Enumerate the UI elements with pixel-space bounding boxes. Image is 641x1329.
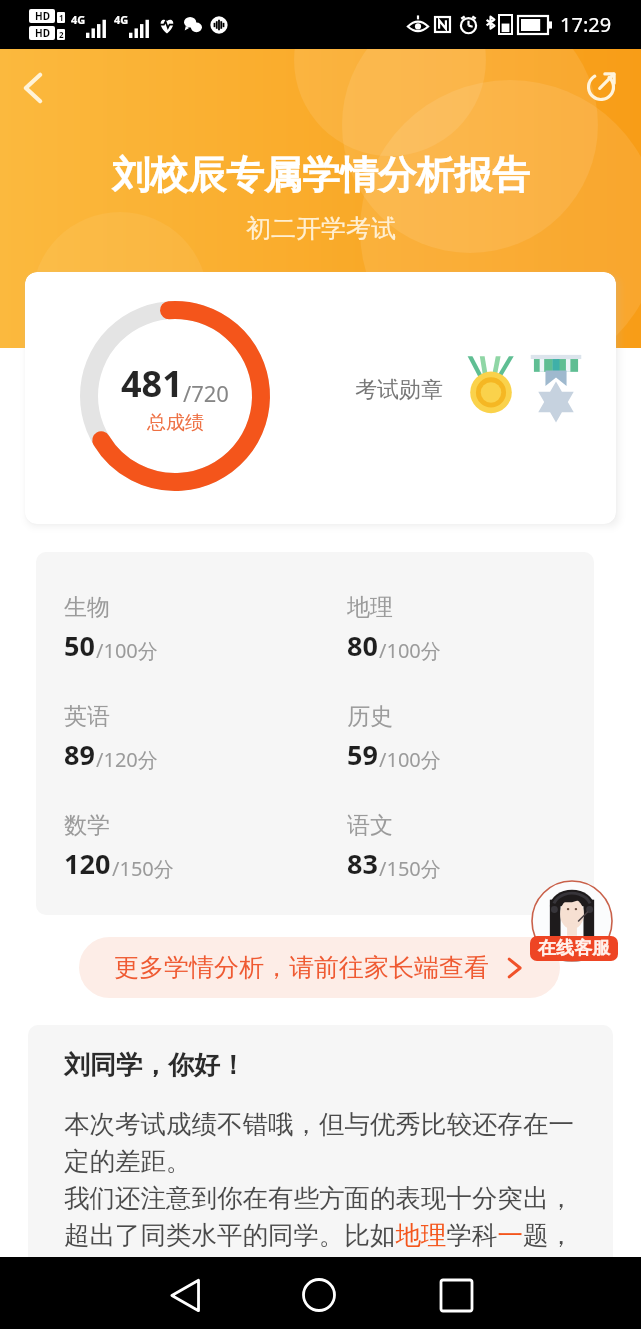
staticText: /120分 <box>96 746 158 773</box>
staticText: 刘同学，你好！ <box>64 1049 246 1082</box>
staticText: 数学 <box>64 811 110 840</box>
staticText: 地理 <box>347 593 393 622</box>
staticText: 生物 <box>64 593 110 622</box>
staticText: HD <box>35 26 50 40</box>
staticText: 2 <box>59 29 64 40</box>
staticText: /720 <box>183 378 229 408</box>
staticText: 总成绩 <box>147 411 204 435</box>
button[interactable]: Online customer service <box>530 880 618 962</box>
staticText: 80 <box>347 627 378 664</box>
staticText: 59 <box>347 736 378 773</box>
button[interactable]: 更多学情分析，请前往家长端查看 <box>79 937 560 998</box>
staticText: 4G <box>114 12 129 27</box>
staticText: 历史 <box>347 702 393 731</box>
button[interactable]: Back <box>152 1262 218 1328</box>
staticText: 17:29 <box>560 11 612 38</box>
staticText: HD <box>35 9 50 23</box>
staticText: 120 <box>64 845 111 882</box>
staticText: 更多学情分析，请前往家长端查看 <box>114 952 489 983</box>
staticText: 刘校辰专属学情分析报告 <box>112 151 530 199</box>
staticText: /150分 <box>112 855 174 882</box>
staticText: 语文 <box>347 811 393 840</box>
staticText: 考试勋章 <box>355 376 443 404</box>
button[interactable]: Home <box>286 1262 352 1328</box>
staticText: /100分 <box>379 637 441 664</box>
staticText: /100分 <box>379 746 441 773</box>
staticText: 83 <box>347 845 378 882</box>
staticText: 英语 <box>64 702 110 731</box>
staticText: 4G <box>71 12 86 27</box>
staticText: 1 <box>59 12 64 23</box>
staticText: /150分 <box>379 855 441 882</box>
staticText: 本次考试成绩不错哦，但与优秀比较还存在一 定的差距。 我们还注意到你在有些方面的… <box>64 1108 594 1287</box>
button[interactable]: Back <box>8 63 58 113</box>
staticText: 50 <box>64 627 95 664</box>
staticText: 在线客服 <box>538 937 610 960</box>
staticText: /100分 <box>96 637 158 664</box>
staticText: 初二开学考试 <box>246 213 396 244</box>
staticText: 89 <box>64 736 95 773</box>
button[interactable]: Recent apps <box>423 1262 489 1328</box>
button[interactable]: Share <box>576 62 626 112</box>
staticText: 481 <box>121 359 183 408</box>
